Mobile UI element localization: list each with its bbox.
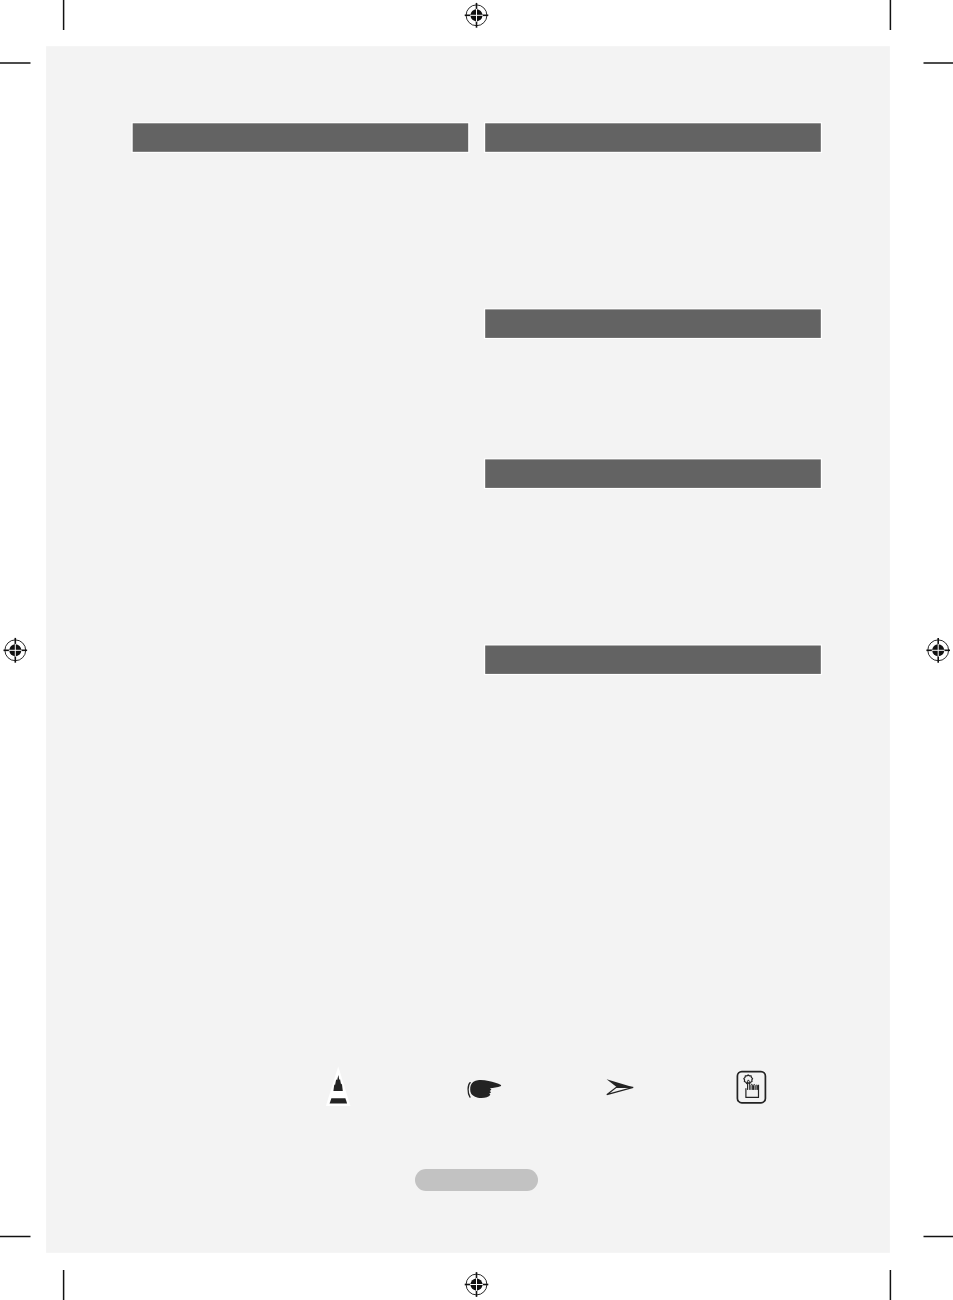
button[interactable]: Page indicator — [415, 1169, 538, 1191]
button[interactable]: Note — [462, 1074, 508, 1104]
button[interactable]: Tap — [734, 1068, 770, 1106]
button[interactable]: Caution — [318, 1062, 358, 1112]
button[interactable]: Send — [600, 1074, 638, 1100]
